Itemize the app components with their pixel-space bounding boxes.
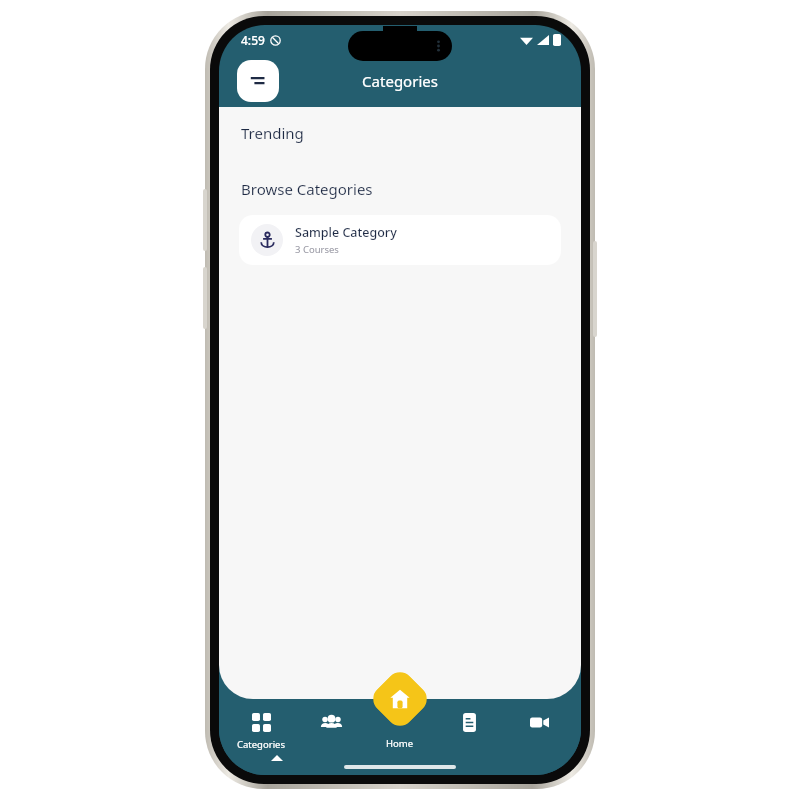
button[interactable]: Documents	[440, 711, 498, 734]
button[interactable]: Videos	[510, 711, 568, 734]
staticText: Sample Category	[295, 224, 397, 241]
staticText: 4:59	[241, 32, 265, 48]
button[interactable]: Sample Category	[239, 215, 561, 265]
button[interactable]: Home	[367, 666, 433, 732]
staticText: Categories	[237, 738, 285, 751]
staticText: Categories	[362, 71, 438, 91]
staticText: Home	[386, 737, 414, 750]
button[interactable]: Categories	[232, 711, 290, 753]
button[interactable]: Community	[302, 711, 360, 734]
staticText: 3 Courses	[295, 243, 339, 256]
button[interactable]: Menu	[237, 60, 279, 102]
staticText: Trending	[241, 123, 304, 143]
staticText: Browse Categories	[241, 179, 373, 199]
